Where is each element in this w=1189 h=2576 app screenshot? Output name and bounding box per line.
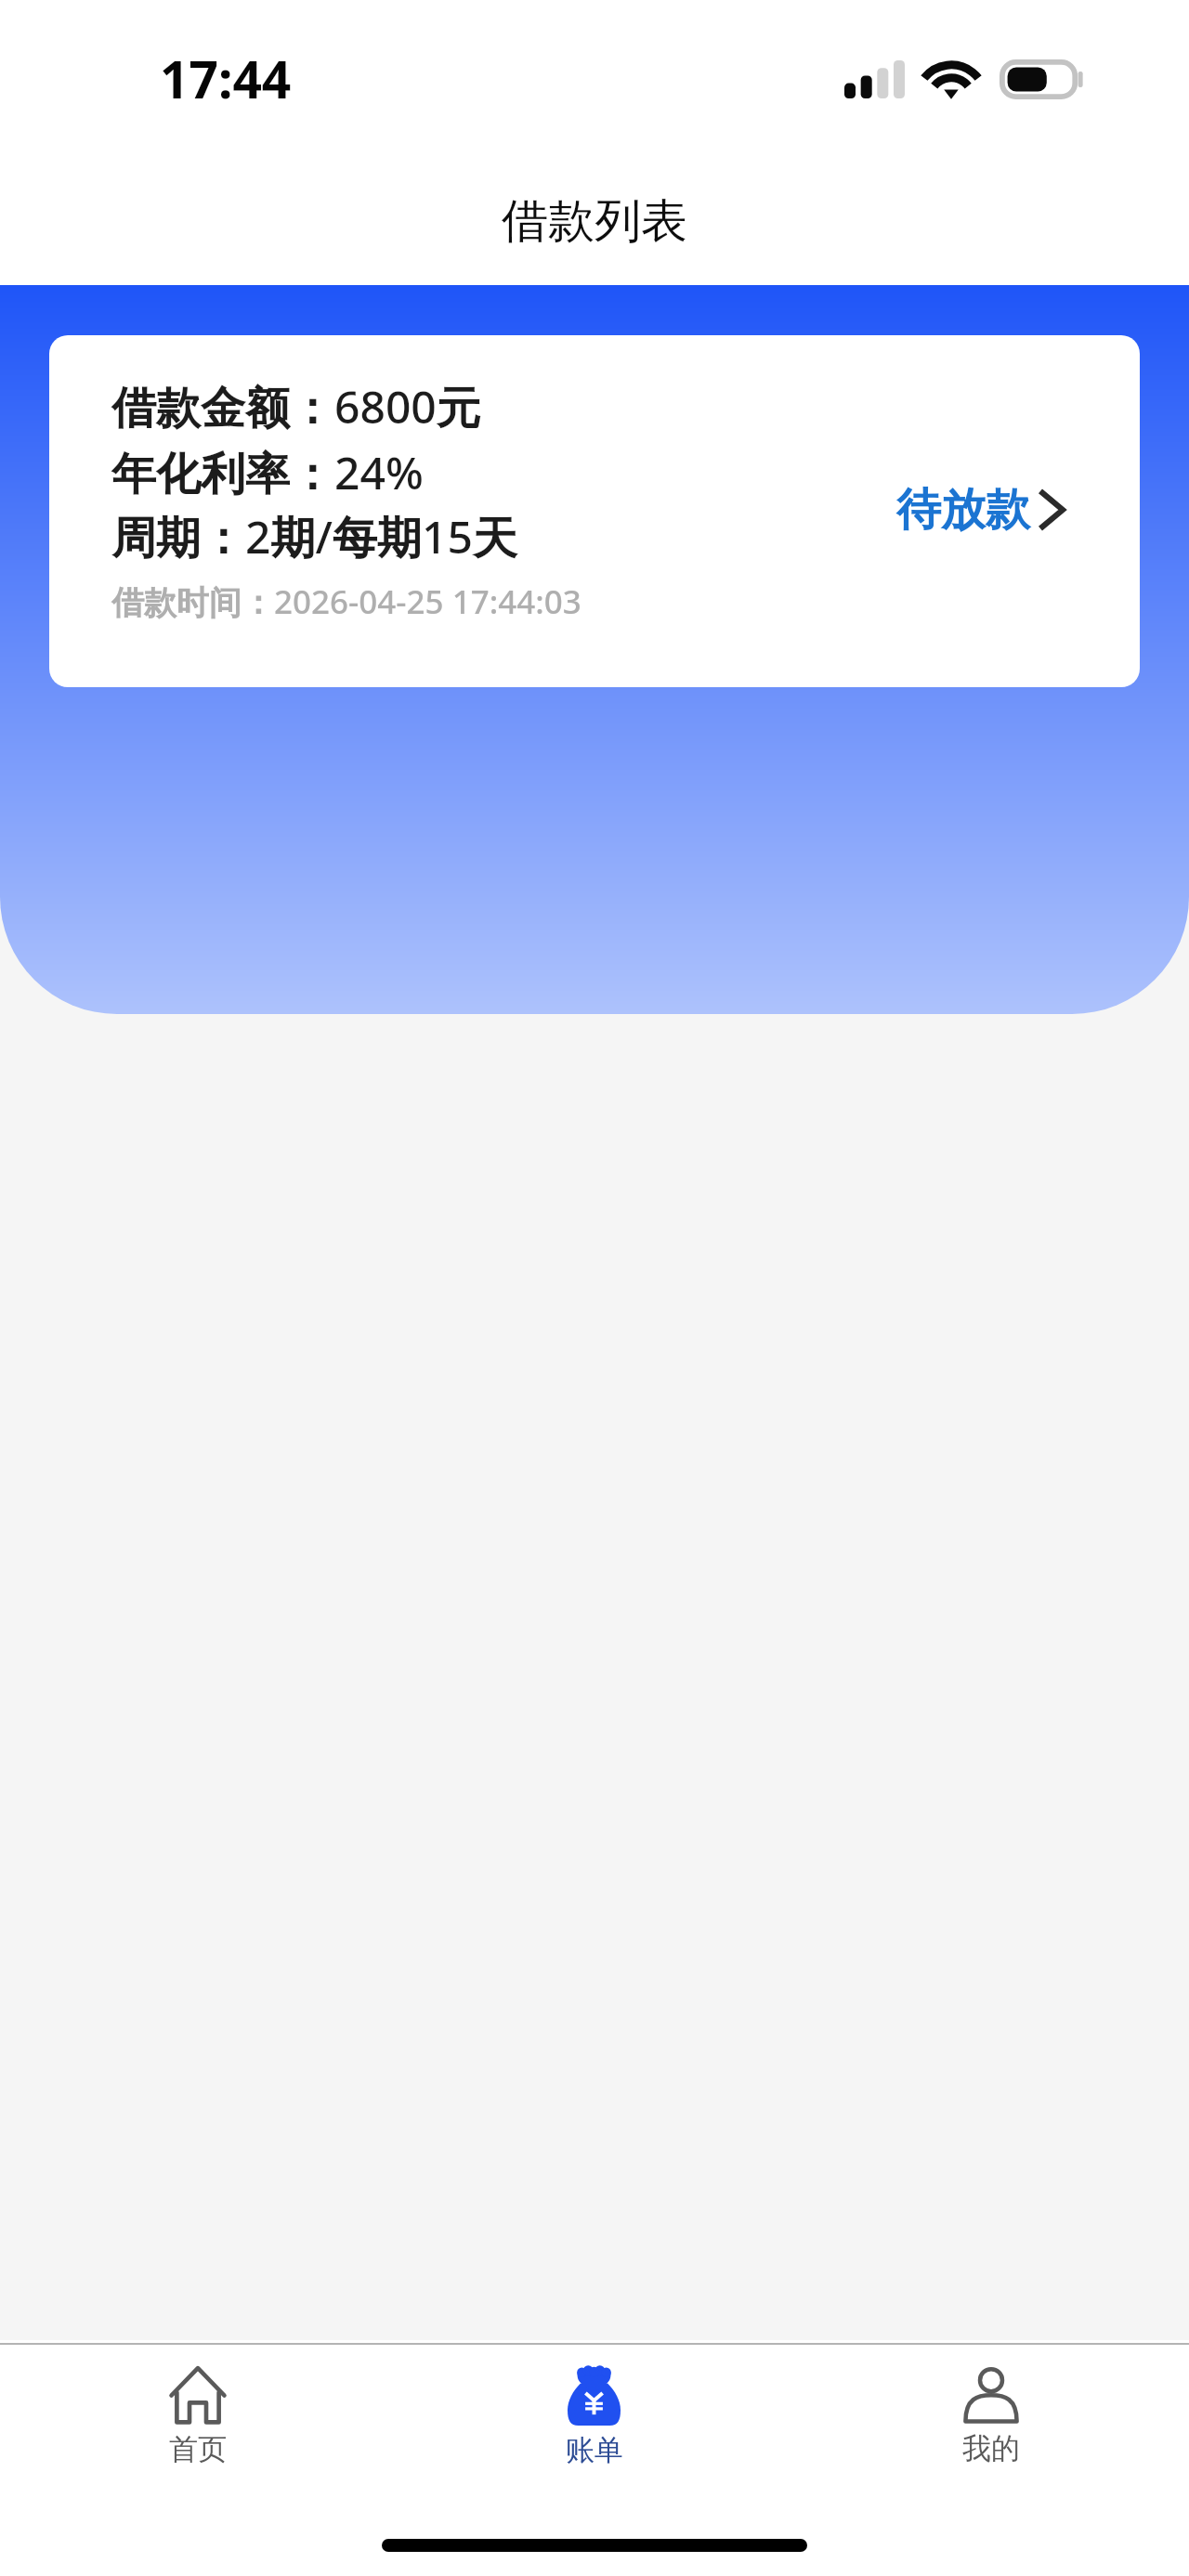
button[interactable]: 借款金额：6800元 [49, 335, 1140, 687]
staticText: 待放款 [896, 482, 1030, 538]
button[interactable]: 首页 [0, 2345, 396, 2465]
staticText: 我的 [962, 2430, 1020, 2465]
staticText: 借款时间：2026-04-25 17:44:03 [111, 579, 581, 624]
other: 我的 [963, 2366, 1019, 2424]
other: 账单 [568, 2366, 621, 2426]
button[interactable]: 账单 [396, 2345, 792, 2465]
staticText: 年化利率：24% [111, 442, 424, 503]
button[interactable]: 待放款 [896, 481, 1065, 539]
staticText: 借款金额：6800元 [111, 376, 481, 437]
button[interactable]: 我的 [792, 2345, 1189, 2465]
other: 首页 [169, 2366, 227, 2425]
staticText: 17:44 [160, 44, 292, 113]
staticText: 借款列表 [502, 192, 687, 251]
staticText: 首页 [169, 2431, 227, 2465]
staticText: 账单 [566, 2432, 623, 2465]
staticText: 周期：2期/每期15天 [111, 506, 517, 567]
